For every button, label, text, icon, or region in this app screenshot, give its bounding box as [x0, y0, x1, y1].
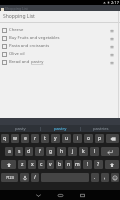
- staticText: a: [8, 148, 11, 155]
- staticText: d: [27, 148, 31, 155]
- button[interactable]: Reorder: [108, 35, 115, 42]
- button[interactable]: v: [47, 160, 54, 169]
- staticText: Shopping List: [5, 6, 28, 11]
- staticText: Pasta and croissants: [9, 43, 50, 49]
- staticText: pasty: [15, 126, 26, 132]
- button[interactable]: Olive oil: [0, 50, 120, 58]
- button[interactable]: w: [11, 134, 19, 143]
- staticText: p: [98, 135, 102, 142]
- staticText: Bread and: [9, 59, 31, 65]
- staticText: .: [94, 174, 96, 181]
- button[interactable]: c: [38, 160, 45, 169]
- staticText: ?123: [6, 175, 14, 180]
- button[interactable]: i: [73, 134, 82, 143]
- button[interactable]: Back: [33, 190, 44, 200]
- staticText: c: [40, 161, 43, 168]
- staticText: m: [75, 161, 80, 168]
- staticText: z: [21, 161, 24, 168]
- button[interactable]: j: [68, 147, 77, 156]
- staticText: h: [60, 148, 64, 155]
- button[interactable]: q: [1, 134, 9, 143]
- button[interactable]: u: [62, 134, 71, 143]
- staticText: v: [49, 161, 52, 168]
- staticText: w: [13, 135, 17, 142]
- button[interactable]: Enter: [101, 147, 119, 156]
- staticText: q: [3, 135, 7, 142]
- button[interactable]: ?123: [1, 173, 18, 182]
- button[interactable]: a: [5, 147, 13, 156]
- button[interactable]: Shift: [1, 160, 16, 169]
- button[interactable]: r: [31, 134, 39, 143]
- button[interactable]: t: [41, 134, 49, 143]
- button[interactable]: Bread and: [0, 58, 120, 66]
- staticText: x: [31, 161, 34, 168]
- staticText: pastry: [31, 59, 44, 65]
- staticText: pastries: [93, 126, 109, 132]
- staticText: 2:17: [111, 0, 119, 5]
- button[interactable]: Recent apps: [77, 190, 88, 200]
- button[interactable]: ?: [94, 160, 103, 169]
- button[interactable]: Reorder: [108, 27, 115, 34]
- button[interactable]: d: [25, 147, 33, 156]
- button[interactable]: h: [57, 147, 66, 156]
- staticText: g: [49, 148, 53, 155]
- button[interactable]: e: [21, 134, 29, 143]
- button[interactable]: b: [56, 160, 63, 169]
- staticText: b: [58, 161, 62, 168]
- button[interactable]: s: [15, 147, 23, 156]
- button[interactable]: pastries: [81, 125, 120, 132]
- staticText: n: [67, 161, 71, 168]
- button[interactable]: k: [79, 147, 88, 156]
- button[interactable]: !: [83, 160, 92, 169]
- button[interactable]: ,: [101, 173, 109, 182]
- staticText: l: [94, 148, 96, 155]
- button[interactable]: p: [95, 134, 104, 143]
- button[interactable]: z: [18, 160, 26, 169]
- staticText: pastry: [54, 126, 67, 132]
- button[interactable]: pasty: [0, 125, 40, 132]
- staticText: k: [82, 148, 85, 155]
- button[interactable]: Pasta and croissants: [0, 42, 120, 50]
- staticText: r: [34, 135, 37, 142]
- staticText: ?: [97, 161, 100, 168]
- staticText: i: [77, 135, 79, 142]
- button[interactable]: Reorder: [108, 59, 115, 66]
- staticText: Shopping List: [3, 13, 35, 20]
- button[interactable]: /: [31, 173, 39, 182]
- button[interactable]: Voice input: [20, 173, 29, 182]
- button[interactable]: y: [51, 134, 60, 143]
- button[interactable]: f: [35, 147, 44, 156]
- button[interactable]: Delete: [106, 134, 119, 143]
- button[interactable]: m: [74, 160, 81, 169]
- staticText: j: [72, 148, 74, 155]
- staticText: u: [65, 135, 69, 142]
- button[interactable]: l: [90, 147, 99, 156]
- button[interactable]: .: [91, 173, 99, 182]
- staticText: /: [34, 174, 36, 181]
- button[interactable]: g: [46, 147, 55, 156]
- button[interactable]: o: [84, 134, 93, 143]
- button[interactable]: Emoji: [111, 173, 119, 182]
- staticText: !: [87, 161, 89, 168]
- staticText: s: [18, 148, 21, 155]
- staticText: t: [44, 135, 46, 142]
- button[interactable]: Reorder: [108, 51, 115, 58]
- button[interactable]: Shift: [105, 160, 119, 169]
- button[interactable]: n: [65, 160, 72, 169]
- staticText: ,: [104, 174, 106, 181]
- button[interactable]: pastry: [41, 125, 80, 132]
- staticText: o: [87, 135, 91, 142]
- staticText: f: [39, 148, 41, 155]
- staticText: y: [54, 135, 57, 142]
- button[interactable]: Home: [55, 190, 66, 200]
- button[interactable]: x: [28, 160, 36, 169]
- staticText: Buy Fruits and vegetables: [9, 35, 60, 41]
- button[interactable]: Buy Fruits and vegetables: [0, 34, 120, 42]
- staticText: Cheese: [9, 27, 24, 33]
- staticText: Olive oil: [9, 51, 25, 57]
- staticText: e: [24, 135, 27, 142]
- button[interactable]: Reorder: [108, 43, 115, 50]
- button[interactable]: Cheese: [0, 26, 120, 34]
